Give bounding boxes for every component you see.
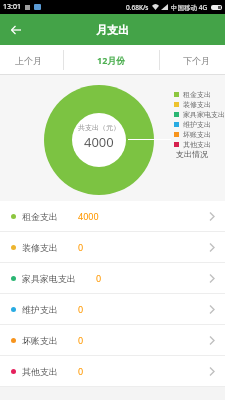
button[interactable]: 装修支出 <box>0 232 225 263</box>
button[interactable]: 租金支出 <box>0 201 225 232</box>
staticText: 0.68K/s <box>126 3 149 12</box>
staticText: 租金支出 <box>183 90 211 99</box>
staticText: 家具家电支出 <box>22 273 76 284</box>
button[interactable]: 上个月 <box>0 45 63 75</box>
staticText: 月支出 <box>96 23 129 37</box>
staticText: 0 <box>78 365 84 377</box>
button[interactable]: 坏账支出 <box>0 325 225 356</box>
staticText: 0 <box>78 334 84 346</box>
staticText: 12月份 <box>97 54 126 66</box>
staticText: 13:01 <box>3 2 21 12</box>
staticText: 0 <box>78 241 84 253</box>
staticText: 租金支出 <box>22 211 58 222</box>
staticText: 坏账支出 <box>183 130 211 139</box>
staticText: 家具家电支出 <box>183 110 225 119</box>
staticText: 4000 <box>78 210 99 222</box>
button[interactable]: 其他支出 <box>0 356 225 387</box>
staticText: 0 <box>96 272 102 284</box>
button[interactable]: 下个月 <box>160 45 225 75</box>
staticText: 上个月 <box>15 55 42 66</box>
button[interactable]: 家具家电支出 <box>0 263 225 294</box>
button[interactable]: 维护支出 <box>0 294 225 325</box>
staticText: 维护支出 <box>183 120 211 129</box>
staticText: 其他支出 <box>22 366 58 377</box>
button[interactable] <box>6 20 26 40</box>
staticText: 装修支出 <box>183 100 211 109</box>
staticText: 坏账支出 <box>22 335 58 346</box>
button[interactable]: 12月份 <box>64 45 159 75</box>
staticText: 4000 <box>84 133 114 151</box>
staticText: 维护支出 <box>22 304 58 315</box>
staticText: 装修支出 <box>22 242 58 253</box>
staticText: 共支出（元） <box>78 123 120 132</box>
staticText: 中国移动 4G <box>171 3 208 12</box>
staticText: 其他支出 <box>183 140 211 149</box>
staticText: 支出情况 <box>176 149 208 159</box>
staticText: 0 <box>78 303 84 315</box>
staticText: 下个月 <box>183 55 210 66</box>
